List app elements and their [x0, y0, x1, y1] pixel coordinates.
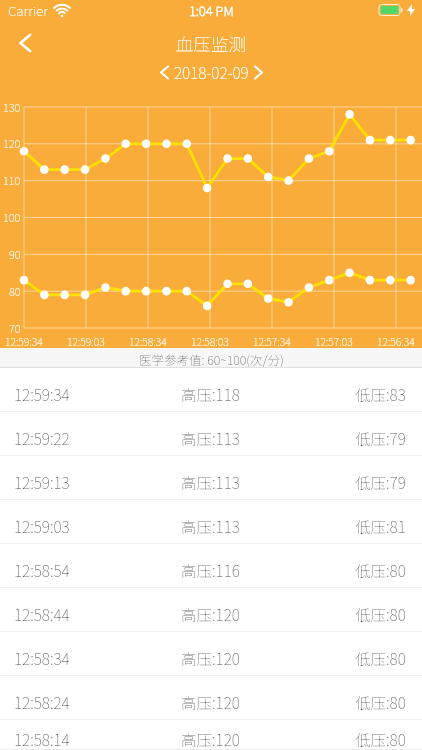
staticText: 低压:79	[355, 427, 406, 449]
staticText: 低压:80	[355, 691, 406, 713]
staticText: 2018-02-09	[174, 61, 249, 83]
staticText: 低压:80	[355, 603, 406, 625]
staticText: 90	[9, 246, 21, 262]
staticText: 12:59:34	[14, 383, 70, 405]
staticText: 医学参考值: 60~100(次/分)	[139, 350, 284, 368]
button[interactable]: 12:58:14	[0, 720, 422, 750]
staticText: 130	[3, 99, 21, 115]
staticText: 110	[3, 172, 21, 188]
staticText: 高压:116	[181, 559, 240, 581]
button[interactable]: 12:59:03	[0, 500, 422, 544]
button[interactable]: 12:58:24	[0, 676, 422, 720]
button[interactable]: 12:58:54	[0, 544, 422, 588]
button[interactable]: 12:58:44	[0, 588, 422, 632]
staticText: 80	[9, 283, 21, 299]
staticText: 低压:80	[355, 728, 406, 750]
staticText: 12:58:14	[14, 728, 70, 750]
staticText: 高压:120	[181, 691, 240, 713]
staticText: 120	[3, 135, 21, 151]
button[interactable]: 12:59:34	[0, 368, 422, 412]
staticText: 12:59:22	[14, 427, 70, 449]
staticText: 12:56:34	[377, 334, 415, 349]
button[interactable]: 2018-02-09	[0, 61, 422, 83]
staticText: 12:58:34	[129, 334, 167, 349]
button[interactable]: 12:58:34	[0, 632, 422, 676]
staticText: Carrier	[8, 0, 48, 20]
staticText: 高压:113	[181, 471, 240, 493]
staticText: 低压:80	[355, 559, 406, 581]
staticText: 12:57:03	[315, 334, 353, 349]
staticText: 高压:120	[181, 728, 240, 750]
button[interactable]: 12:59:13	[0, 456, 422, 500]
staticText: 12:59:03	[14, 515, 70, 537]
button[interactable]	[8, 30, 40, 56]
staticText: 低压:80	[355, 647, 406, 669]
staticText: 12:59:03	[67, 334, 105, 349]
staticText: 12:58:03	[191, 334, 229, 349]
staticText: 高压:120	[181, 647, 240, 669]
staticText: 12:58:24	[14, 691, 70, 713]
button[interactable]: 12:59:22	[0, 412, 422, 456]
staticText: 100	[3, 209, 21, 225]
staticText: 低压:79	[355, 471, 406, 493]
staticText: 12:57:34	[253, 334, 291, 349]
staticText: 高压:113	[181, 427, 240, 449]
staticText: 12:58:44	[14, 603, 70, 625]
staticText: 低压:81	[355, 515, 406, 537]
staticText: 高压:120	[181, 603, 240, 625]
staticText: 12:58:54	[14, 559, 70, 581]
staticText: 12:59:34	[5, 334, 43, 349]
staticText: 低压:83	[355, 383, 406, 405]
staticText: 1:04 PM	[189, 1, 234, 20]
staticText: 12:59:13	[14, 471, 70, 493]
staticText: 12:58:34	[14, 647, 70, 669]
staticText: 血压监测	[176, 31, 246, 56]
staticText: 70	[9, 320, 21, 336]
staticText: 高压:118	[181, 383, 240, 405]
staticText: 高压:113	[181, 515, 240, 537]
